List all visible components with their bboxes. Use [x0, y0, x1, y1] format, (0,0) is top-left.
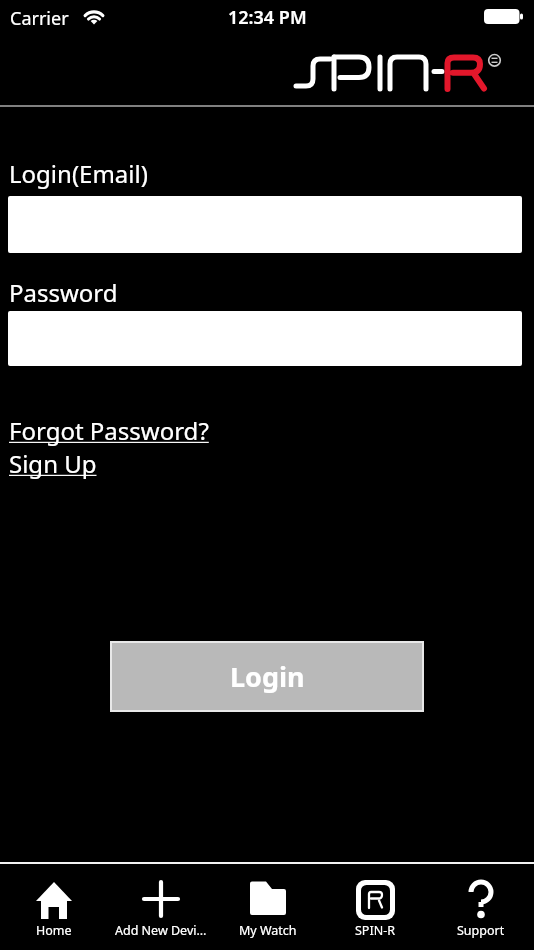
staticText: Carrier: [10, 6, 69, 31]
button[interactable]: Login: [110, 641, 424, 712]
staticText: Login: [230, 658, 305, 695]
button[interactable]: Home: [0, 864, 107, 939]
button[interactable]: Forgot Password?: [9, 414, 209, 447]
staticText: Login(Email): [9, 157, 148, 190]
button[interactable]: Add New Devi…: [107, 864, 214, 939]
staticText: Password: [9, 276, 118, 309]
staticText: SPIN-R: [355, 922, 395, 939]
staticText: Home: [36, 922, 72, 939]
button[interactable]: Sign Up: [9, 447, 97, 480]
staticText: Add New Devi…: [115, 922, 207, 939]
staticText: 12:34 PM: [228, 5, 307, 30]
button[interactable]: Support: [428, 864, 534, 939]
staticText: Support: [457, 922, 505, 939]
button[interactable]: SPIN-R: [321, 864, 428, 939]
staticText: My Watch: [239, 922, 297, 939]
button[interactable]: My Watch: [214, 864, 321, 939]
